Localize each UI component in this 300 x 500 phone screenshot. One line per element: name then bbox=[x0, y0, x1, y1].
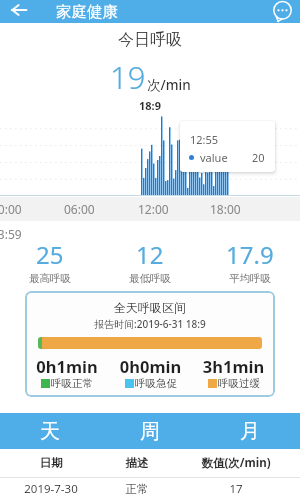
staticText: 0h1min bbox=[25, 355, 109, 377]
staticText: 18:9 bbox=[139, 98, 161, 113]
staticText: value bbox=[200, 150, 228, 165]
staticText: 全天呼吸区间 bbox=[114, 300, 186, 315]
staticText: 最低呼吸 bbox=[129, 272, 171, 285]
staticText: 呼吸正常 bbox=[51, 377, 93, 390]
staticText: 天 bbox=[40, 419, 60, 444]
staticText: 呼吸急促 bbox=[135, 377, 177, 390]
staticText: 数值(次/min) bbox=[172, 455, 300, 471]
staticText: 12:55 bbox=[190, 132, 219, 147]
staticText: 20 bbox=[252, 150, 265, 165]
staticText: 17.9 bbox=[226, 238, 274, 271]
staticText: 12:00 bbox=[138, 201, 169, 217]
staticText: 06:00 bbox=[64, 201, 95, 217]
staticText: 今日呼吸 bbox=[118, 30, 182, 50]
button[interactable]: Back bbox=[7, 1, 30, 18]
button[interactable]: Messages bbox=[271, 0, 294, 23]
staticText: 呼吸过缓 bbox=[218, 377, 260, 390]
staticText: 19 bbox=[110, 56, 146, 98]
staticText: 23:59 bbox=[0, 226, 22, 242]
button[interactable]: 周 bbox=[100, 413, 200, 449]
button[interactable]: 2019-7-30 bbox=[0, 478, 300, 500]
staticText: 描述 bbox=[102, 456, 172, 470]
staticText: 家庭健康 bbox=[56, 2, 118, 22]
staticText: 3h1min bbox=[192, 355, 275, 377]
button[interactable]: 月 bbox=[200, 413, 300, 449]
staticText: 报告时间:2019-6-31 18:9 bbox=[94, 317, 206, 331]
staticText: 正常 bbox=[102, 482, 172, 496]
staticText: 日期 bbox=[0, 456, 102, 470]
staticText: 周 bbox=[140, 419, 160, 444]
staticText: 17 bbox=[172, 481, 300, 497]
staticText: 0h0min bbox=[109, 355, 192, 377]
button[interactable]: 天 bbox=[0, 413, 100, 449]
staticText: 12 bbox=[136, 238, 164, 271]
button[interactable]: 全天呼吸区间 bbox=[25, 291, 275, 397]
staticText: 最高呼吸 bbox=[29, 272, 71, 285]
staticText: 次/min bbox=[147, 76, 191, 94]
staticText: 18:00 bbox=[210, 201, 241, 217]
staticText: 平均呼吸 bbox=[229, 272, 271, 285]
staticText: 2019-7-30 bbox=[0, 481, 102, 497]
staticText: 25 bbox=[36, 238, 64, 271]
staticText: 00:00 bbox=[0, 201, 22, 217]
staticText: 月 bbox=[240, 419, 260, 444]
